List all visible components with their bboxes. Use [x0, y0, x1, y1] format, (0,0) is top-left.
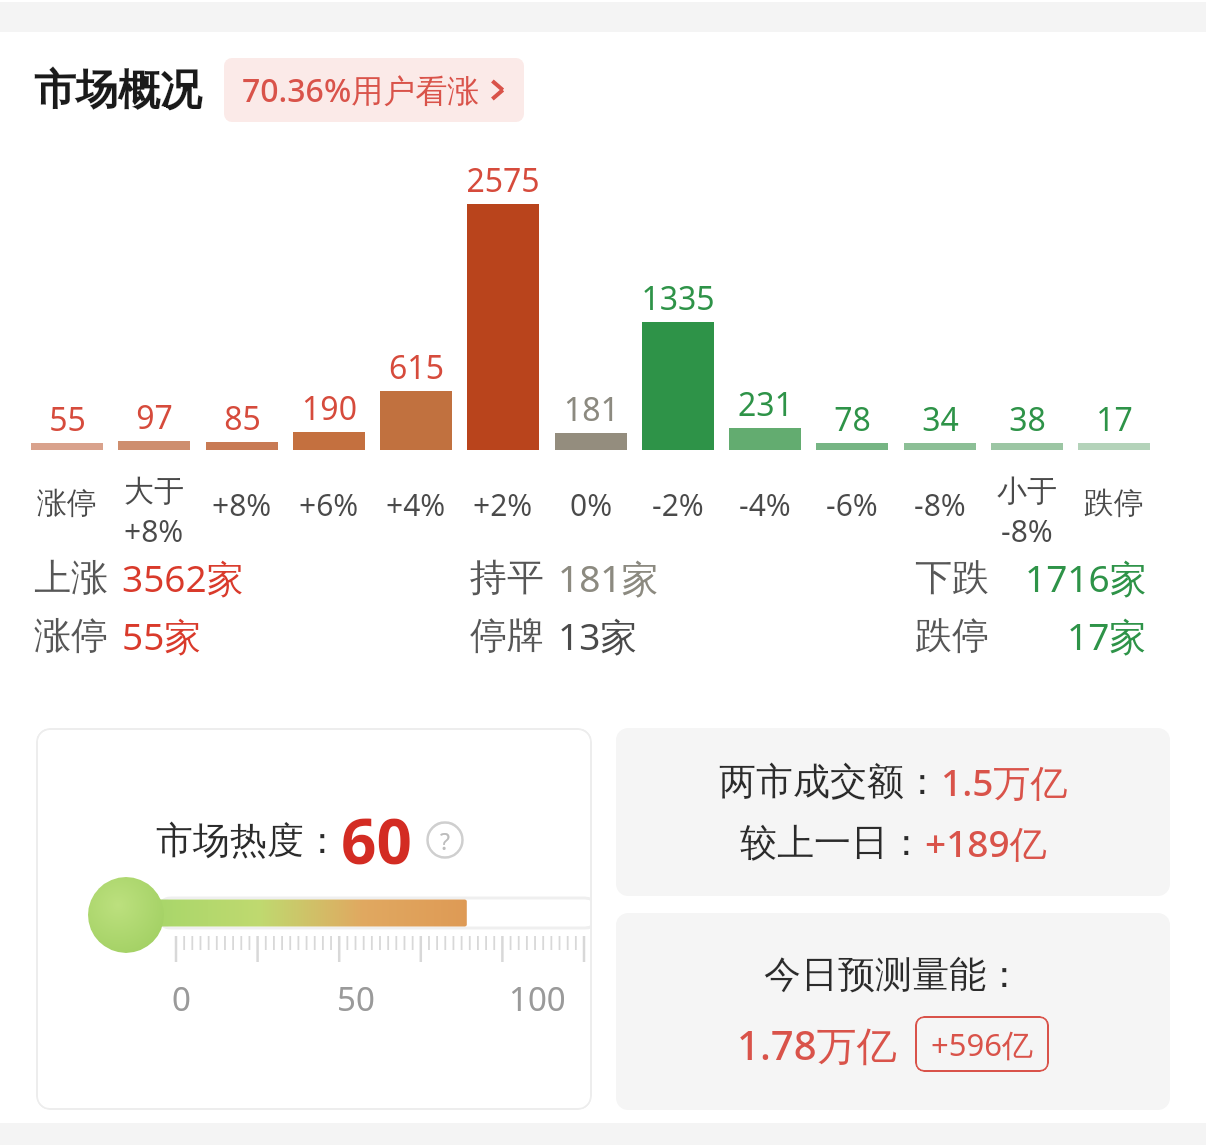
staticText: 停牌 [470, 612, 544, 659]
button[interactable]: 70.36%用户看涨 [224, 58, 524, 122]
staticText: -8% [1001, 510, 1053, 551]
staticText: ? [440, 825, 450, 856]
staticText: +8% [124, 510, 184, 551]
staticText: 1716家 [1025, 552, 1147, 603]
staticText: 60 [341, 798, 412, 882]
staticText: +4% [386, 484, 446, 525]
staticText: 181 [564, 387, 619, 431]
staticText: 100 [509, 976, 566, 1021]
staticText: 55 [49, 397, 86, 441]
staticText: 17家 [1067, 610, 1147, 661]
staticText: 38 [1009, 397, 1046, 441]
staticText: -8% [914, 484, 966, 525]
staticText: 190 [302, 386, 357, 430]
staticText: 跌停 [1084, 484, 1144, 522]
staticText: 今日预测量能： [764, 951, 1023, 998]
staticText: 涨停 [34, 612, 108, 659]
staticText: 34 [922, 397, 959, 441]
button[interactable]: 两市成交额： [616, 728, 1170, 896]
staticText: 2575 [466, 158, 540, 202]
staticText: +8% [212, 484, 272, 525]
staticText: 615 [389, 345, 444, 389]
staticText: 0% [570, 484, 613, 525]
staticText: 两市成交额： [719, 758, 941, 805]
staticText: +189亿 [925, 817, 1047, 868]
staticText: 17 [1096, 397, 1133, 441]
staticText: 181家 [558, 552, 659, 603]
staticText: 0 [172, 976, 191, 1021]
staticText: 市场热度： [156, 817, 341, 864]
staticText: 持平 [470, 554, 544, 601]
staticText: -4% [739, 484, 791, 525]
staticText: 70.36%用户看涨 [242, 68, 480, 112]
staticText: 涨停 [37, 484, 97, 522]
staticText: 78 [834, 397, 871, 441]
staticText: 13家 [558, 610, 638, 661]
staticText: 较上一日： [740, 819, 925, 866]
button[interactable]: 帮助 [426, 821, 464, 859]
staticText: 1.5万亿 [941, 756, 1068, 807]
staticText: +596亿 [931, 1023, 1033, 1065]
staticText: -2% [652, 484, 704, 525]
staticText: 大于 [124, 472, 184, 510]
staticText: 50 [337, 976, 375, 1021]
staticText: 3562家 [122, 552, 244, 603]
staticText: 97 [136, 395, 173, 439]
button[interactable]: 市场热度： [36, 728, 592, 1110]
button[interactable]: 今日预测量能： [616, 913, 1170, 1110]
staticText: 下跌 [915, 554, 989, 601]
staticText: 1335 [641, 276, 715, 320]
staticText: 85 [224, 396, 261, 440]
staticText: +2% [473, 484, 533, 525]
staticText: 跌停 [915, 612, 989, 659]
staticText: -6% [826, 484, 878, 525]
staticText: 小于 [997, 472, 1057, 510]
staticText: 上涨 [34, 554, 108, 601]
staticText: 市场概况 [34, 64, 202, 117]
staticText: +6% [299, 484, 359, 525]
staticText: 55家 [122, 610, 202, 661]
staticText: 231 [738, 382, 793, 426]
staticText: 1.78万亿 [737, 1017, 897, 1072]
